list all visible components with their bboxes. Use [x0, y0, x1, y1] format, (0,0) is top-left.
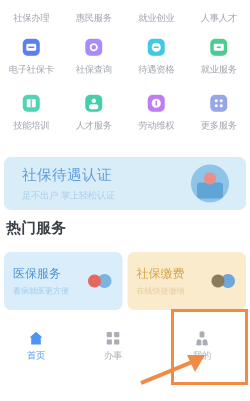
staticText: 社保查询	[76, 64, 112, 75]
button[interactable]: 社保查询	[62, 37, 125, 77]
button[interactable]: 我的	[154, 329, 250, 363]
staticText: 在线快捷缴纳	[136, 286, 184, 296]
staticText: 惠民服务	[76, 12, 112, 24]
staticText: 劳动维权	[138, 120, 174, 131]
staticText: 更多服务	[201, 120, 237, 131]
button[interactable]: 人才服务	[62, 93, 125, 133]
button[interactable]: 首页	[0, 329, 72, 363]
button[interactable]: 电子社保卡	[0, 37, 62, 77]
staticText: 热门服务	[6, 219, 66, 237]
staticText: 就业服务	[201, 64, 237, 75]
staticText: 社保办理	[13, 12, 49, 24]
staticText: 社保待遇认证	[22, 166, 112, 184]
staticText: 看病就医更方便	[13, 286, 69, 296]
button[interactable]: 劳动维权	[125, 93, 187, 133]
staticText: 技能培训	[13, 120, 49, 131]
button[interactable]: 技能培训	[0, 93, 62, 133]
staticText: 人事人才	[201, 12, 237, 24]
button[interactable]: 就业服务	[187, 37, 250, 77]
button[interactable]: 社保待遇认证	[4, 157, 246, 210]
staticText: 办事	[104, 350, 122, 361]
staticText: 待遇资格	[138, 64, 174, 75]
staticText: 首页	[27, 350, 45, 361]
staticText: 足不出户 掌上轻松认证	[22, 190, 115, 201]
staticText: 我的	[193, 350, 211, 361]
button[interactable]: 医保服务	[4, 252, 122, 310]
staticText: 就业创业	[138, 12, 174, 24]
button[interactable]: 待遇资格	[125, 37, 187, 77]
staticText: 电子社保卡	[9, 64, 54, 75]
staticText: 人才服务	[76, 120, 112, 131]
staticText: 医保服务	[13, 266, 61, 281]
button[interactable]: 办事	[72, 329, 154, 363]
button[interactable]: 更多服务	[187, 93, 250, 133]
staticText: 社保缴费	[136, 266, 184, 281]
button[interactable]: 社保缴费	[127, 252, 246, 310]
